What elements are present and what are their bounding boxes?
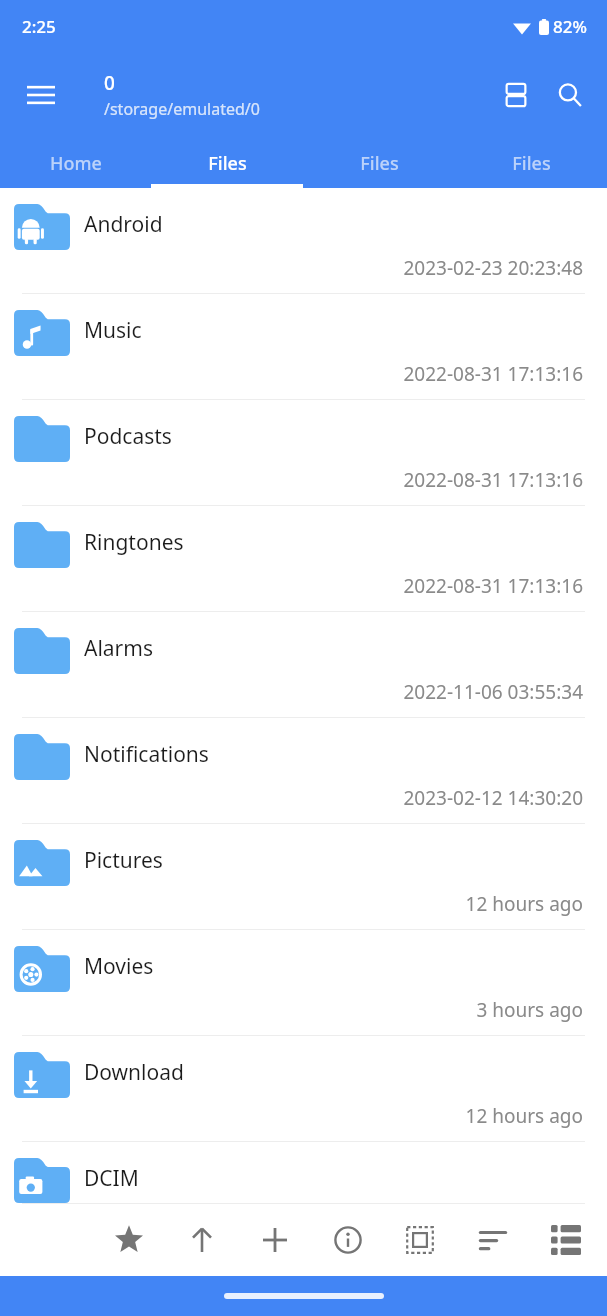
- button[interactable]: Alarms: [0, 612, 607, 718]
- staticText: /storage/emulated/0: [104, 98, 260, 120]
- button[interactable]: Files: [455, 138, 607, 188]
- staticText: 2022-08-31 17:13:16: [84, 361, 583, 387]
- button[interactable]: Notifications: [0, 718, 607, 824]
- staticText: Movies: [84, 952, 154, 981]
- button[interactable]: DCIM: [0, 1142, 607, 1204]
- button[interactable]: Ringtones: [0, 506, 607, 612]
- staticText: 12 hours ago: [84, 891, 583, 917]
- staticText: 3 hours ago: [84, 997, 583, 1023]
- staticText: 2022-11-06 03:55:34: [84, 679, 583, 705]
- button[interactable]: Sort: [466, 1213, 520, 1267]
- button[interactable]: Info: [321, 1213, 375, 1267]
- staticText: Files: [208, 151, 247, 176]
- button[interactable]: Files: [303, 138, 455, 188]
- staticText: 2:25: [22, 15, 56, 38]
- button[interactable]: Menu: [14, 68, 68, 122]
- button[interactable]: Download: [0, 1036, 607, 1142]
- button[interactable]: Pictures: [0, 824, 607, 930]
- staticText: 0: [104, 70, 115, 96]
- button[interactable]: Podcasts: [0, 400, 607, 506]
- staticText: Android: [84, 210, 163, 239]
- staticText: Home: [50, 151, 102, 176]
- staticText: 12 hours ago: [84, 1103, 583, 1129]
- button[interactable]: Android: [0, 188, 607, 294]
- staticText: 2022-08-31 17:13:16: [84, 573, 583, 599]
- button[interactable]: Music: [0, 294, 607, 400]
- button[interactable]: Movies: [0, 930, 607, 1036]
- button[interactable]: Go up: [175, 1213, 229, 1267]
- staticText: 2023-02-23 20:23:48: [84, 255, 583, 281]
- button[interactable]: Select all: [393, 1213, 447, 1267]
- staticText: Files: [512, 151, 551, 176]
- staticText: DCIM: [84, 1164, 139, 1193]
- button[interactable]: Add: [248, 1213, 302, 1267]
- button[interactable]: List view: [539, 1213, 593, 1267]
- staticText: Music: [84, 316, 142, 345]
- staticText: Files: [360, 151, 399, 176]
- staticText: Download: [84, 1058, 184, 1087]
- button[interactable]: Split view: [489, 68, 543, 122]
- button[interactable]: Favourite: [102, 1213, 156, 1267]
- button[interactable]: Files: [151, 138, 303, 188]
- button[interactable]: Search: [543, 68, 597, 122]
- staticText: Podcasts: [84, 422, 172, 451]
- staticText: 82%: [553, 15, 587, 38]
- staticText: Ringtones: [84, 528, 184, 557]
- staticText: Notifications: [84, 740, 209, 769]
- staticText: Pictures: [84, 846, 163, 875]
- staticText: 2023-02-12 14:30:20: [84, 785, 583, 811]
- staticText: 2022-08-31 17:13:16: [84, 467, 583, 493]
- staticText: Alarms: [84, 634, 153, 663]
- button[interactable]: Home: [0, 138, 151, 188]
